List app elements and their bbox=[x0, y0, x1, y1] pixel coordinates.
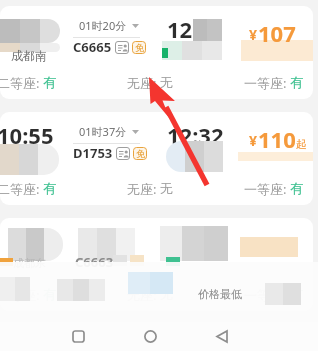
staticText: 价格最低 bbox=[198, 287, 242, 301]
button[interactable]: Recent apps bbox=[62, 322, 94, 351]
staticText: 无 bbox=[160, 74, 173, 90]
staticText: 有 bbox=[290, 180, 303, 196]
staticText: ¥ bbox=[249, 25, 258, 44]
staticText: C6663 bbox=[75, 253, 114, 271]
staticText: 一等座: bbox=[244, 180, 290, 198]
staticText: 免 bbox=[135, 42, 144, 53]
staticText: 有 bbox=[290, 286, 303, 302]
staticText: 无 bbox=[160, 286, 173, 302]
staticText: 成都南 bbox=[11, 48, 47, 63]
button[interactable]: Back bbox=[206, 322, 238, 351]
staticText: 有 bbox=[43, 74, 56, 90]
staticText: 无 bbox=[160, 180, 173, 196]
staticText: 免 bbox=[136, 148, 145, 159]
staticText: ¥ bbox=[249, 131, 258, 150]
staticText: 起 bbox=[296, 137, 307, 151]
staticText: D1753 bbox=[73, 144, 113, 162]
button[interactable]: 成都东 bbox=[0, 218, 313, 311]
staticText: 107 bbox=[258, 18, 296, 48]
staticText: 无座: bbox=[127, 74, 160, 92]
staticText: 110 bbox=[258, 124, 296, 154]
staticText: 12:32 bbox=[167, 120, 224, 150]
staticText: 01时37分 bbox=[79, 124, 127, 139]
button[interactable]: 10:55 bbox=[0, 112, 313, 205]
staticText: C6665 bbox=[73, 38, 112, 56]
staticText: 01时20分 bbox=[79, 18, 127, 33]
staticText: 无座: bbox=[127, 286, 160, 304]
staticText: 12: bbox=[167, 14, 199, 44]
staticText: 一等座: bbox=[244, 74, 290, 92]
staticText: 二等座: bbox=[0, 74, 43, 92]
staticText: 一等座: bbox=[244, 286, 290, 304]
staticText: 无座: bbox=[127, 180, 160, 198]
staticText: 10:55 bbox=[0, 120, 54, 150]
staticText: 二等座: bbox=[0, 180, 43, 198]
staticText: 成都东 bbox=[13, 256, 46, 270]
staticText: 二等座: bbox=[0, 286, 43, 304]
button[interactable]: Home bbox=[134, 322, 166, 351]
staticText: 有 bbox=[290, 74, 303, 90]
staticText: 有 bbox=[43, 180, 56, 196]
button[interactable]: 成都南 bbox=[0, 6, 313, 99]
